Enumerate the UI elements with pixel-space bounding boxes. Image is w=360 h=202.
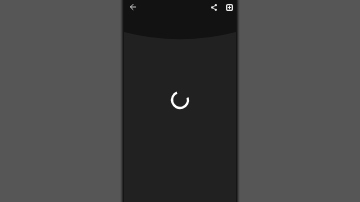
button[interactable]: Back: [125, 0, 141, 15]
button[interactable]: Video player: [124, 0, 236, 40]
button[interactable]: Share: [206, 0, 222, 15]
button[interactable]: Add to playlist: [221, 0, 237, 15]
